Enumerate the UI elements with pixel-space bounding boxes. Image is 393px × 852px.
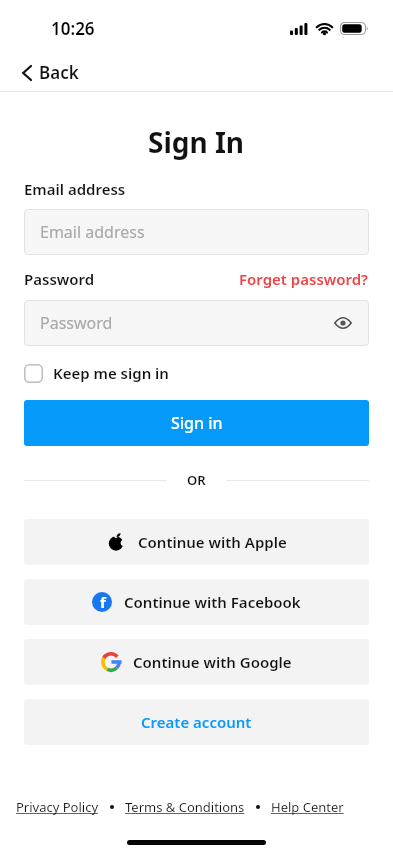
button[interactable]: Sign in [24, 400, 369, 446]
staticText: Continue with Google [133, 652, 292, 672]
button[interactable]: Email address [24, 209, 369, 255]
button[interactable]: Privacy Policy [16, 798, 99, 816]
staticText: Back [39, 61, 79, 84]
button[interactable]: Create account [24, 699, 369, 745]
button[interactable]: Continue with Google [24, 639, 369, 685]
staticText: f [100, 592, 106, 612]
staticText: Continue with Apple [138, 532, 287, 552]
staticText: OR [187, 471, 206, 489]
staticText: Sign in [171, 412, 223, 434]
staticText: Email address [24, 179, 126, 199]
staticText: Keep me sign in [53, 363, 169, 383]
button[interactable]: Forget password? [239, 269, 369, 289]
button[interactable]: Terms & Conditions [125, 798, 245, 816]
button[interactable]: Help Center [271, 798, 344, 816]
staticText: Password [40, 312, 113, 334]
staticText: 10:26 [51, 17, 95, 40]
button[interactable]: Password [24, 300, 369, 346]
button[interactable]: Continue with Apple [24, 519, 369, 565]
staticText: Password [24, 269, 95, 289]
button[interactable]: f [24, 579, 369, 625]
button[interactable]: Back [0, 54, 393, 91]
staticText: Create account [141, 712, 252, 732]
staticText: Sign In [148, 123, 245, 161]
staticText: Continue with Facebook [124, 592, 301, 612]
button[interactable]: Keep me sign in [24, 363, 169, 383]
staticText: Email address [40, 221, 145, 243]
